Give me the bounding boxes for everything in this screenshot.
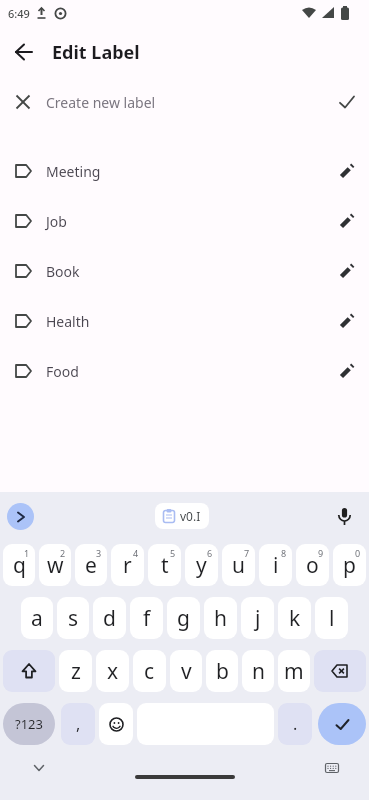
- button[interactable]: v: [170, 650, 202, 692]
- button[interactable]: [0, 28, 48, 76]
- button[interactable]: i: [259, 544, 292, 586]
- button[interactable]: b: [206, 650, 238, 692]
- staticText: Meeting: [46, 162, 101, 181]
- staticText: c: [144, 657, 155, 686]
- button[interactable]: r: [111, 544, 144, 586]
- button[interactable]: a: [21, 597, 53, 639]
- button[interactable]: [318, 703, 366, 745]
- button[interactable]: t: [148, 544, 181, 586]
- staticText: m: [284, 657, 304, 686]
- button[interactable]: j: [241, 597, 274, 639]
- button[interactable]: [3, 650, 55, 692]
- staticText: 0: [355, 547, 361, 559]
- staticText: Job: [46, 212, 67, 231]
- staticText: z: [71, 657, 81, 686]
- button[interactable]: o: [296, 544, 329, 586]
- staticText: b: [216, 657, 229, 686]
- staticText: f: [143, 604, 151, 633]
- button[interactable]: ,: [61, 703, 95, 745]
- staticText: d: [103, 604, 116, 633]
- button[interactable]: Job: [0, 196, 369, 246]
- button[interactable]: Health: [0, 296, 369, 346]
- staticText: 6: [207, 547, 213, 559]
- button[interactable]: [330, 502, 359, 531]
- button[interactable]: k: [278, 597, 311, 639]
- staticText: q: [13, 551, 26, 580]
- staticText: p: [343, 551, 356, 580]
- button[interactable]: w: [39, 544, 71, 586]
- button[interactable]: [7, 503, 34, 530]
- staticText: i: [273, 551, 279, 580]
- button[interactable]: d: [93, 597, 126, 639]
- staticText: r: [123, 551, 132, 580]
- button[interactable]: y: [185, 544, 218, 586]
- staticText: s: [68, 604, 79, 633]
- staticText: v: [181, 657, 192, 686]
- button[interactable]: g: [167, 597, 200, 639]
- button[interactable]: Food: [0, 346, 369, 396]
- staticText: 7: [244, 547, 250, 559]
- button[interactable]: e: [75, 544, 107, 586]
- staticText: 6:49: [8, 6, 30, 21]
- staticText: j: [255, 604, 261, 633]
- staticText: o: [306, 551, 319, 580]
- button[interactable]: f: [130, 597, 163, 639]
- staticText: ?123: [15, 715, 43, 733]
- button[interactable]: s: [57, 597, 89, 639]
- staticText: h: [214, 604, 227, 633]
- button[interactable]: Meeting: [0, 146, 369, 196]
- button[interactable]: [323, 759, 341, 777]
- button[interactable]: [99, 703, 133, 745]
- staticText: v0.I: [180, 508, 201, 524]
- button[interactable]: x: [96, 650, 129, 692]
- button[interactable]: u: [222, 544, 255, 586]
- staticText: u: [232, 551, 245, 580]
- button[interactable]: [325, 263, 369, 279]
- staticText: Create new label: [46, 93, 156, 112]
- staticText: y: [196, 551, 207, 580]
- staticText: .: [293, 713, 298, 735]
- staticText: 9: [318, 547, 324, 559]
- button[interactable]: Create new label: [0, 78, 369, 126]
- button[interactable]: [30, 759, 48, 777]
- staticText: k: [289, 604, 301, 633]
- staticText: 8: [281, 547, 287, 559]
- staticText: Food: [46, 362, 79, 381]
- button[interactable]: l: [315, 597, 348, 639]
- staticText: Edit Label: [52, 40, 140, 65]
- staticText: 4: [133, 547, 139, 559]
- button[interactable]: [135, 775, 235, 779]
- button[interactable]: [325, 213, 369, 229]
- staticText: w: [47, 551, 64, 580]
- staticText: Book: [46, 262, 80, 281]
- button[interactable]: z: [59, 650, 92, 692]
- button[interactable]: h: [204, 597, 237, 639]
- staticText: l: [329, 604, 335, 633]
- staticText: 2: [60, 547, 66, 559]
- staticText: t: [161, 551, 169, 580]
- staticText: Health: [46, 312, 90, 331]
- staticText: x: [107, 657, 119, 686]
- staticText: e: [85, 551, 97, 580]
- button[interactable]: [325, 313, 369, 329]
- button[interactable]: p: [333, 544, 366, 586]
- button[interactable]: c: [133, 650, 166, 692]
- staticText: g: [177, 604, 190, 633]
- button[interactable]: q: [3, 544, 35, 586]
- staticText: n: [252, 657, 265, 686]
- staticText: 1: [24, 547, 30, 559]
- button[interactable]: [325, 363, 369, 379]
- button[interactable]: m: [278, 650, 310, 692]
- button[interactable]: n: [242, 650, 274, 692]
- button[interactable]: v0.I: [163, 503, 201, 529]
- button[interactable]: [314, 650, 366, 692]
- button[interactable]: Book: [0, 246, 369, 296]
- staticText: ,: [76, 713, 81, 735]
- button[interactable]: ?123: [3, 703, 55, 745]
- staticText: 3: [96, 547, 102, 559]
- button[interactable]: [325, 163, 369, 179]
- staticText: a: [31, 604, 43, 633]
- button[interactable]: .: [278, 703, 312, 745]
- staticText: 5: [170, 547, 176, 559]
